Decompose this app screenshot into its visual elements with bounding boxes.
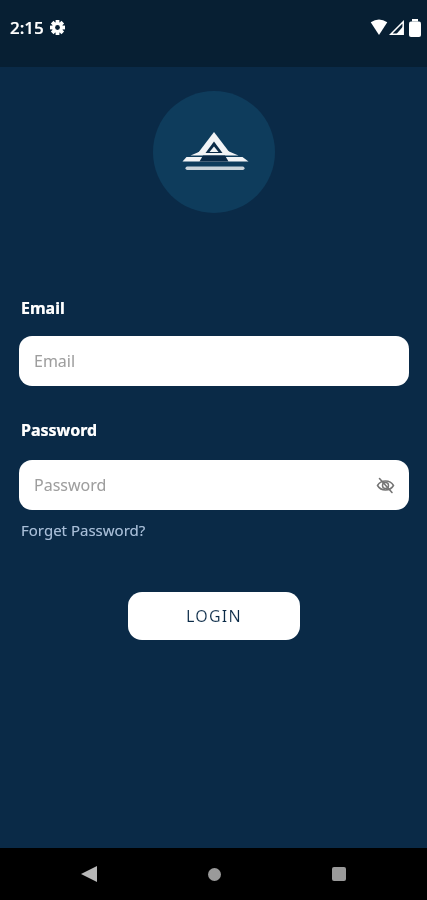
button[interactable] bbox=[315, 850, 363, 898]
staticText: 2:15 bbox=[10, 16, 44, 39]
button[interactable]: Email bbox=[19, 336, 409, 386]
staticText: Password bbox=[34, 474, 107, 496]
button[interactable] bbox=[65, 850, 113, 898]
button[interactable]: LOGIN bbox=[128, 592, 300, 640]
button[interactable]: Forget Password? bbox=[21, 520, 146, 540]
staticText: Password bbox=[21, 419, 98, 441]
staticText: LOGIN bbox=[186, 605, 242, 627]
button[interactable]: Password bbox=[19, 460, 409, 510]
staticText: Email bbox=[34, 350, 76, 372]
button[interactable] bbox=[190, 850, 238, 898]
staticText: Email bbox=[21, 297, 65, 319]
